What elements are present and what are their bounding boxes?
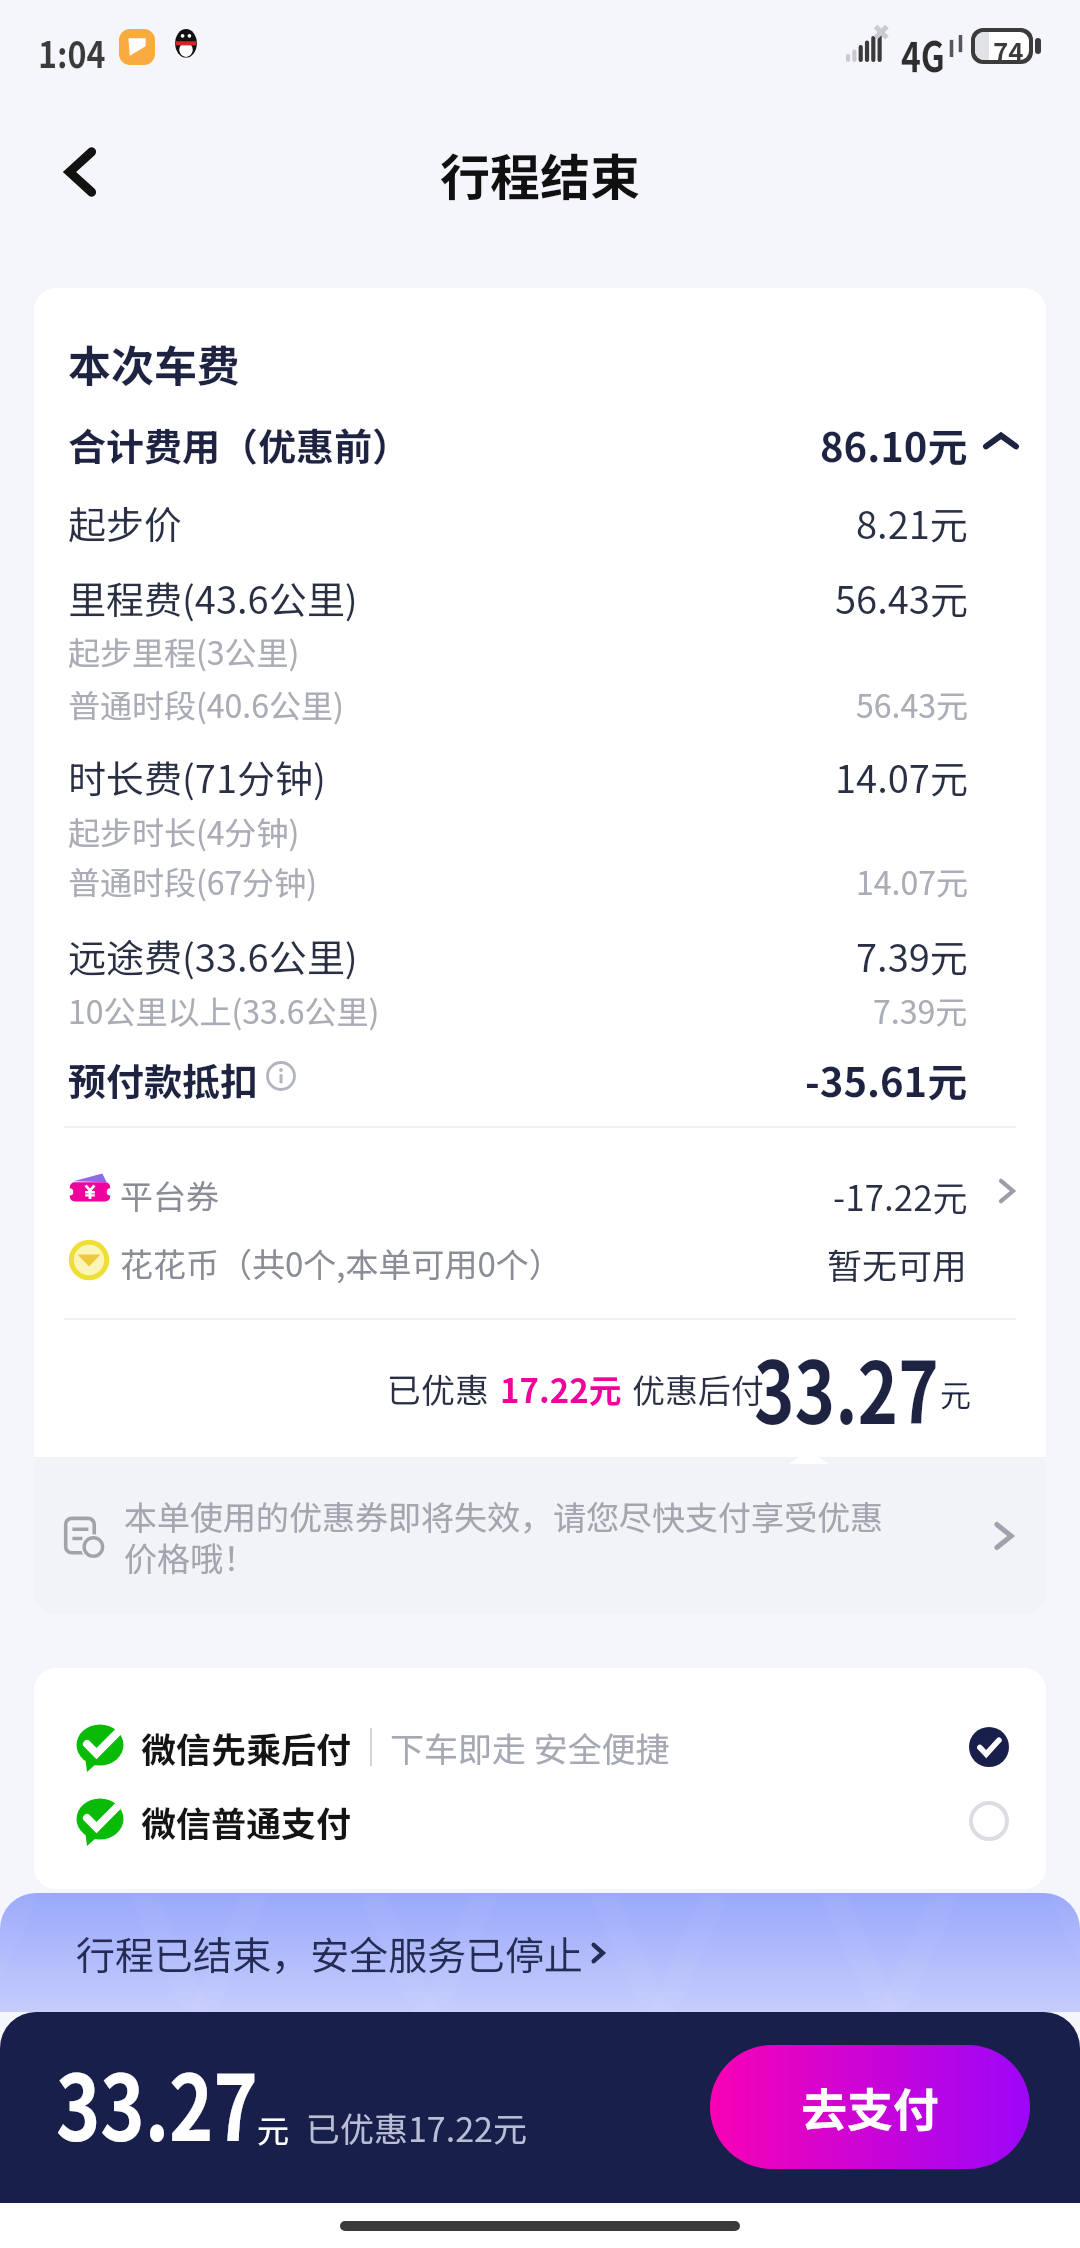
staticText: 17.22元 bbox=[500, 1365, 622, 1413]
staticText: -35.61元 bbox=[805, 1051, 968, 1109]
staticText: 平台券 bbox=[120, 1171, 219, 1219]
staticText: 已优惠 bbox=[387, 1364, 489, 1413]
staticText: 微信普通支付 bbox=[141, 1796, 352, 1847]
staticText: 普通时段(67分钟) bbox=[68, 858, 318, 904]
staticText: 起步时长(4分钟) bbox=[68, 808, 300, 854]
staticText: 去支付 bbox=[801, 2074, 939, 2141]
button[interactable] bbox=[34, 1158, 1046, 1226]
staticText: 1:04 bbox=[38, 25, 106, 79]
staticText: 56.43元 bbox=[856, 681, 968, 727]
staticText: 74 bbox=[993, 32, 1024, 60]
button[interactable]: 本单使用的优惠券即将失效，请您尽快支付享受优惠价格哦！ bbox=[64, 1457, 1022, 1614]
button[interactable]: 微信先乘后付 bbox=[75, 1713, 1009, 1781]
staticText: 花花币（共0个,本单可用0个） bbox=[120, 1239, 562, 1287]
staticText: 微信先乘后付 bbox=[141, 1722, 352, 1773]
button[interactable]: Back bbox=[36, 126, 128, 218]
staticText: 里程费(43.6公里) bbox=[68, 570, 358, 625]
staticText: 14.07元 bbox=[856, 858, 968, 904]
staticText: 远途费(33.6公里) bbox=[68, 928, 358, 983]
staticText: 起步价 bbox=[68, 495, 183, 550]
staticText: -17.22元 bbox=[833, 1170, 968, 1221]
staticText: 已优惠17.22元 bbox=[306, 2103, 527, 2152]
staticText: 86.10元 bbox=[820, 416, 968, 474]
staticText: 14.07元 bbox=[835, 749, 968, 804]
staticText: 普通时段(40.6公里) bbox=[68, 681, 344, 727]
staticText: 合计费用（优惠前） bbox=[68, 417, 411, 472]
staticText: 预付款抵扣 bbox=[68, 1052, 259, 1107]
staticText: 4G bbox=[901, 23, 945, 84]
staticText: 优惠后付 bbox=[632, 1365, 764, 1413]
staticText: 8.21元 bbox=[856, 495, 968, 550]
button[interactable] bbox=[34, 400, 1046, 466]
staticText: 10公里以上(33.6公里) bbox=[68, 987, 380, 1033]
staticText: 7.39元 bbox=[873, 987, 968, 1033]
staticText: 本次车费 bbox=[68, 332, 240, 394]
button[interactable]: 行程已结束，安全服务已停止 bbox=[0, 1893, 1080, 2012]
staticText: 元 bbox=[257, 2106, 290, 2152]
button[interactable]: 微信普通支付 bbox=[75, 1787, 1009, 1855]
staticText: 33.27 bbox=[754, 1324, 939, 1434]
staticText: 56.43元 bbox=[835, 570, 968, 625]
staticText: 时长费(71分钟) bbox=[68, 749, 326, 804]
staticText: 起步里程(3公里) bbox=[68, 628, 300, 674]
staticText: 行程已结束，安全服务已停止 bbox=[76, 1925, 584, 1981]
staticText: 本单使用的优惠券即将失效，请您尽快支付享受优惠价格哦！ bbox=[124, 1492, 904, 1580]
staticText: 暂无可用 bbox=[827, 1238, 968, 1289]
staticText: 元 bbox=[940, 1371, 971, 1416]
staticText: 33.27 bbox=[56, 2037, 258, 2167]
staticText: 行程结束 bbox=[440, 138, 640, 210]
staticText: 7.39元 bbox=[856, 928, 968, 983]
button[interactable]: 去支付 bbox=[710, 2045, 1030, 2169]
staticText: 下车即走 安全便捷 bbox=[390, 1723, 670, 1772]
